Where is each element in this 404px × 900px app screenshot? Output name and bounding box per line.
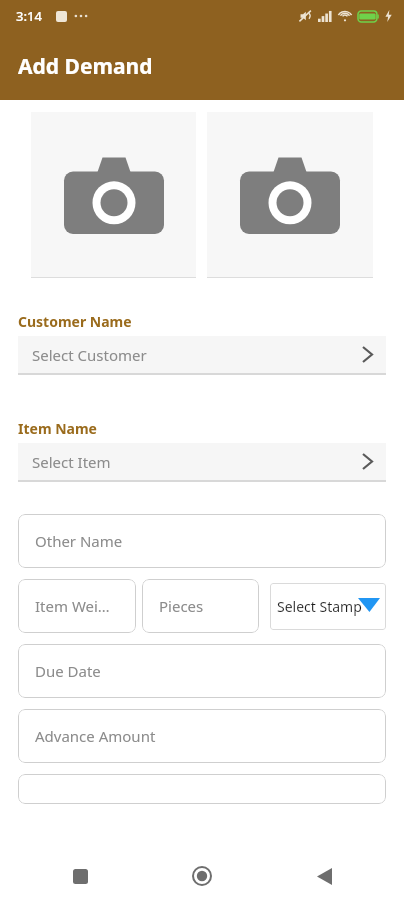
staticText: Advance Amount (35, 726, 156, 746)
button[interactable]: Pieces (142, 579, 259, 633)
button[interactable]: Add photo (31, 112, 196, 278)
button[interactable]: Home (180, 854, 224, 898)
staticText: Item Wei… (35, 596, 110, 616)
staticText: Add Demand (18, 52, 153, 81)
staticText: Item Name (18, 419, 97, 438)
staticText: Pieces (159, 596, 204, 616)
button[interactable]: Advance Amount (18, 709, 386, 763)
button[interactable]: Due Date (18, 644, 386, 698)
button[interactable]: Other Name (18, 514, 386, 568)
button[interactable]: Recent apps (58, 854, 102, 898)
staticText: Other Name (35, 531, 123, 551)
staticText: Select Item (32, 452, 111, 472)
staticText: Select Customer (32, 345, 147, 365)
button[interactable]: Select Stamp (270, 583, 386, 630)
button[interactable]: Item Wei… (18, 579, 136, 633)
button[interactable]: Select Item (18, 443, 386, 482)
button[interactable]: Add photo (207, 112, 373, 278)
staticText: Select Stamp (277, 597, 362, 616)
staticText: Due Date (35, 661, 101, 681)
staticText: 3:14 (16, 7, 42, 25)
button[interactable]: Back (302, 854, 346, 898)
staticText: Customer Name (18, 312, 132, 331)
button[interactable] (18, 774, 386, 804)
button[interactable]: Select Customer (18, 336, 386, 375)
